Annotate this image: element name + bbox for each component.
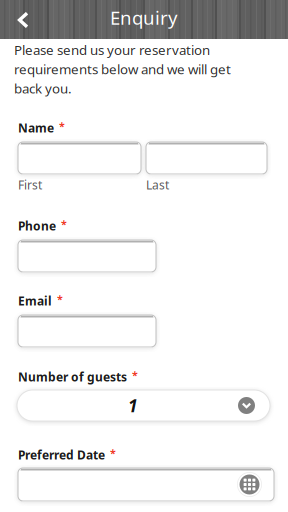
button[interactable]: Pick date — [237, 472, 262, 497]
staticText: Name — [18, 120, 54, 136]
staticText: * — [57, 292, 63, 306]
staticText: 1 — [128, 394, 138, 417]
staticText: Please send us your reservation requirem… — [14, 41, 231, 97]
staticText: Number of guests — [18, 369, 127, 385]
staticText: Last — [146, 177, 169, 193]
staticText: First — [18, 177, 42, 193]
staticText: Phone — [18, 218, 56, 234]
staticText: * — [132, 368, 138, 382]
staticText: * — [61, 217, 67, 231]
staticText: Enquiry — [110, 5, 178, 30]
staticText: Preferred Date — [18, 447, 105, 463]
staticText: * — [59, 119, 65, 133]
button[interactable]: Back — [0, 0, 46, 39]
staticText: Email — [18, 293, 52, 309]
button[interactable]: 1 — [17, 390, 270, 421]
staticText: * — [110, 446, 116, 460]
